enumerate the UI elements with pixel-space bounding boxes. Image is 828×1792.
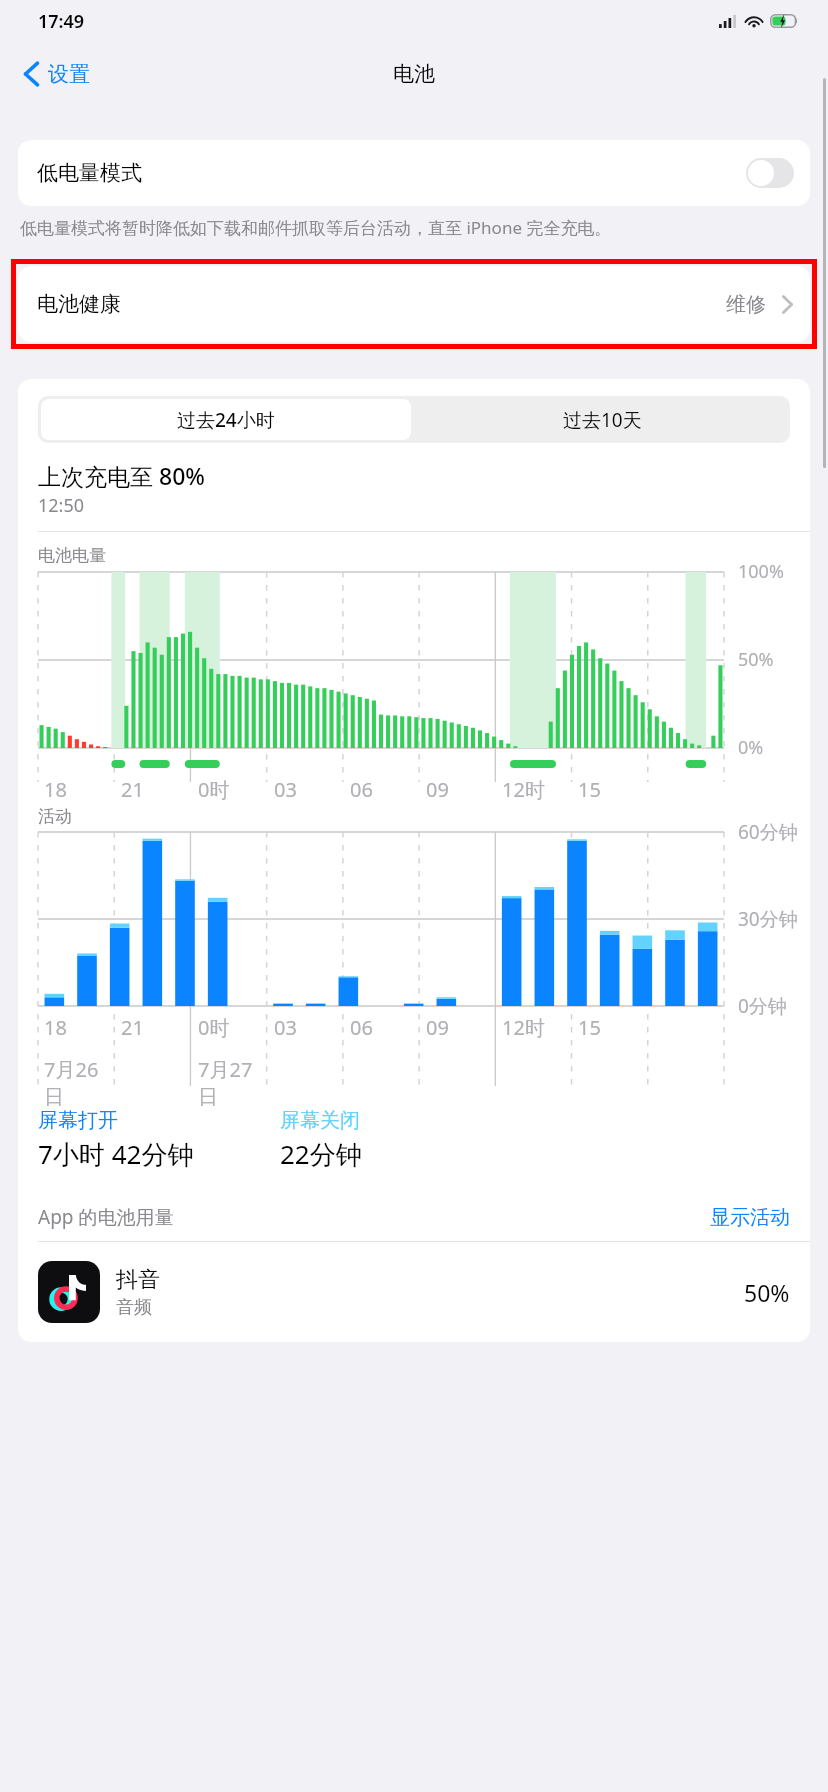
staticText: 0% (738, 735, 764, 760)
staticText: 15 (578, 776, 601, 803)
button[interactable]: 过去10天 (414, 396, 790, 443)
staticText: 音频 (116, 1296, 152, 1319)
button[interactable]: 低电量模式 (18, 140, 810, 206)
staticText: 09 (426, 1014, 449, 1041)
staticText: 低电量模式 (37, 160, 142, 186)
staticText: App 的电池用量 (38, 1204, 174, 1230)
staticText: 22分钟 (280, 1136, 362, 1172)
staticText: 0分钟 (738, 993, 787, 1019)
staticText: 03 (274, 776, 297, 803)
staticText: 21 (121, 776, 144, 803)
staticText: 过去24小时 (177, 407, 275, 433)
staticText: 设置 (48, 61, 90, 87)
staticText: 17:49 (38, 9, 85, 34)
staticText: 屏幕打开 (38, 1108, 118, 1133)
button[interactable]: 低电量模式 开关 (746, 158, 794, 188)
button[interactable]: 电池健康 (18, 266, 810, 342)
staticText: 03 (274, 1014, 297, 1041)
staticText: 50% (738, 647, 774, 672)
staticText: 上次充电至 80% (38, 460, 205, 491)
button[interactable]: 显示活动 (710, 1205, 790, 1230)
staticText: 抖音 (116, 1266, 160, 1294)
button[interactable]: 屏幕关闭 (280, 1108, 360, 1133)
staticText: 60分钟 (738, 819, 798, 845)
staticText: 0时 (198, 1014, 230, 1041)
staticText: 18 (44, 776, 67, 803)
staticText: 30分钟 (738, 906, 798, 932)
staticText: 50% (744, 1277, 790, 1308)
staticText: 电池电量 (38, 545, 106, 566)
staticText: 过去10天 (563, 407, 642, 433)
staticText: 显示活动 (710, 1205, 790, 1230)
staticText: 电池健康 (37, 291, 121, 317)
staticText: 低电量模式将暂时降低如下载和邮件抓取等后台活动，直至 iPhone 完全充电。 (20, 216, 612, 239)
staticText: 7小时 42分钟 (38, 1136, 194, 1172)
button[interactable]: 屏幕打开 (38, 1108, 118, 1133)
staticText: 7月27日 (198, 1056, 268, 1110)
button[interactable]: 设置 (16, 53, 98, 95)
staticText: 12:50 (38, 493, 85, 518)
button[interactable]: 过去24小时 (41, 399, 411, 440)
staticText: 维修 (726, 292, 766, 317)
staticText: 15 (578, 1014, 601, 1041)
staticText: 06 (350, 776, 373, 803)
staticText: 21 (121, 1014, 144, 1041)
staticText: 12时 (502, 1014, 545, 1041)
staticText: 活动 (38, 806, 72, 827)
staticText: 100% (738, 559, 784, 584)
staticText: 06 (350, 1014, 373, 1041)
staticText: 09 (426, 776, 449, 803)
staticText: 12时 (502, 776, 545, 803)
staticText: 18 (44, 1014, 67, 1041)
staticText: 屏幕关闭 (280, 1108, 360, 1133)
staticText: 7月26日 (44, 1056, 115, 1110)
staticText: 电池 (393, 61, 435, 87)
staticText: 0时 (198, 776, 230, 803)
button[interactable]: 抖音 (18, 1242, 810, 1342)
